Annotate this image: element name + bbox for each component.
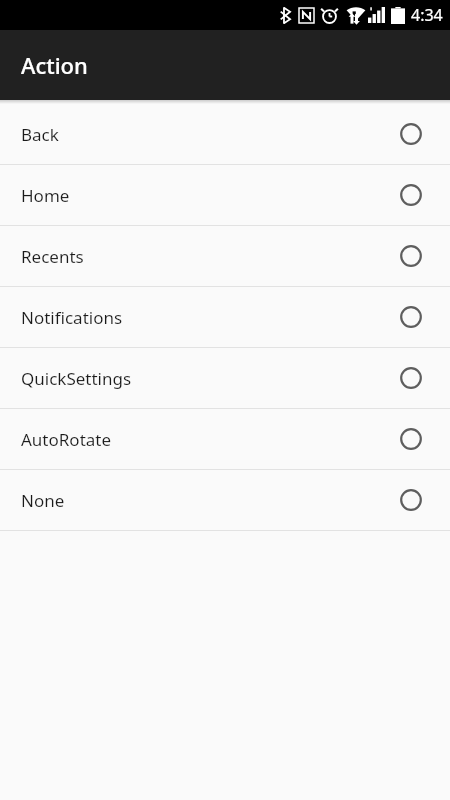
other: Select QuickSettings [400, 367, 422, 389]
staticText: None [21, 489, 65, 512]
button[interactable]: Home [0, 165, 450, 226]
button[interactable]: AutoRotate [0, 409, 450, 470]
button[interactable]: Notifications [0, 287, 450, 348]
other: Select Notifications [400, 306, 422, 328]
staticText: AutoRotate [21, 428, 112, 451]
staticText: Home [21, 184, 70, 207]
button[interactable]: QuickSettings [0, 348, 450, 409]
other: Select Back [400, 123, 422, 145]
other: Select None [400, 489, 422, 511]
staticText: Recents [21, 245, 84, 268]
staticText: QuickSettings [21, 367, 132, 390]
button[interactable]: None [0, 470, 450, 531]
staticText: 4:34 [411, 4, 443, 26]
staticText: Notifications [21, 306, 123, 329]
other: Select AutoRotate [400, 428, 422, 450]
staticText: Back [21, 123, 59, 146]
other: Select Recents [400, 245, 422, 267]
button[interactable]: Recents [0, 226, 450, 287]
button[interactable]: Back [0, 104, 450, 165]
other: Select Home [400, 184, 422, 206]
staticText: Action [21, 50, 88, 80]
